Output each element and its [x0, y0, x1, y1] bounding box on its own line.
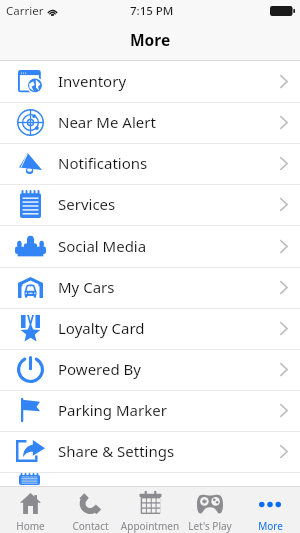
staticText: Near Me Alert	[58, 112, 156, 132]
button[interactable]: Social Media	[0, 226, 300, 268]
button[interactable]: Let's Play	[180, 487, 240, 533]
button[interactable]: Inventory	[0, 61, 300, 103]
button[interactable]: More	[240, 487, 300, 533]
staticText: Inventory	[58, 71, 127, 91]
staticText: Appointment	[120, 519, 180, 533]
button[interactable]: Appointment	[120, 487, 180, 533]
staticText: Home	[16, 519, 45, 533]
staticText: Powered By	[58, 359, 141, 379]
other: Home	[20, 493, 41, 514]
staticText: 7:15 PM	[130, 3, 174, 19]
button[interactable]: Share & Settings	[0, 431, 300, 473]
other: Let's Play	[197, 494, 223, 514]
button[interactable]: My Cars	[0, 267, 300, 309]
button[interactable]: Home	[0, 487, 60, 533]
button[interactable]: Services	[0, 184, 300, 226]
staticText: Contact	[72, 519, 109, 533]
button[interactable]: Parking Marker	[0, 390, 300, 432]
staticText: Share & Settings	[58, 441, 175, 461]
staticText: More	[130, 29, 171, 50]
other: Contact	[79, 493, 101, 514]
button[interactable]: Contact	[60, 487, 120, 533]
staticText: My Cars	[58, 277, 115, 297]
staticText: Let's Play	[188, 519, 232, 533]
button[interactable]: Near Me Alert	[0, 102, 300, 144]
staticText: Services	[58, 194, 116, 214]
other: More	[259, 493, 281, 514]
button[interactable]: Powered By	[0, 349, 300, 391]
button[interactable]: Notifications	[0, 143, 300, 185]
staticText: Parking Marker	[58, 400, 167, 420]
button[interactable]: Loyalty Card	[0, 308, 300, 350]
staticText: Carrier	[6, 3, 44, 19]
staticText: Social Media	[58, 236, 147, 256]
staticText: Loyalty Card	[58, 318, 145, 338]
staticText: Notifications	[58, 153, 148, 173]
staticText: More	[258, 519, 283, 533]
other: Appointment	[139, 491, 162, 514]
